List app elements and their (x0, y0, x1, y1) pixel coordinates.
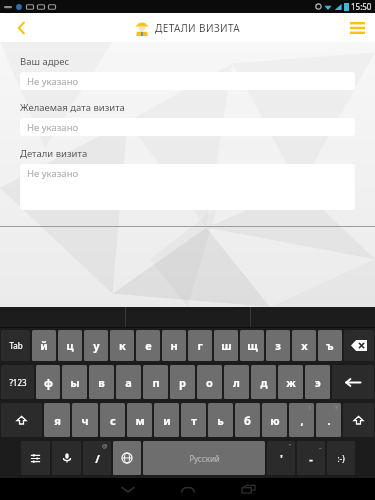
staticText: д (260, 375, 268, 390)
button[interactable]: б (235, 403, 260, 437)
button[interactable]: я (44, 403, 70, 437)
staticText: у (93, 338, 100, 353)
button[interactable]: з (266, 330, 290, 361)
staticText: ? (335, 404, 338, 412)
button[interactable]: ?123 (1, 365, 34, 399)
button[interactable]: Voice input (52, 441, 81, 475)
staticText: в (98, 375, 105, 390)
staticText: Ваш адрес (20, 55, 70, 68)
button[interactable]: Не указано (20, 118, 355, 136)
staticText: ! (309, 404, 311, 412)
staticText: - (309, 451, 313, 466)
button[interactable]: Home (158, 478, 218, 500)
button[interactable]: , (289, 403, 314, 437)
staticText: Не указано (27, 167, 79, 180)
button[interactable]: Backspace (344, 330, 374, 361)
staticText: ю (270, 413, 280, 428)
button[interactable]: ю (262, 403, 287, 437)
button[interactable]: Settings (21, 441, 50, 475)
staticText: ъ (326, 338, 334, 353)
button[interactable]: Enter (332, 365, 374, 399)
staticText: Детали визита (20, 147, 88, 160)
button[interactable]: . (316, 403, 341, 437)
button[interactable]: с (100, 403, 125, 437)
button[interactable]: щ (240, 330, 264, 361)
staticText: х (301, 338, 308, 353)
staticText: :-) (337, 453, 345, 464)
staticText: ж (286, 375, 296, 390)
button[interactable]: э (305, 365, 330, 399)
button[interactable]: Shift (343, 403, 374, 437)
button[interactable]: Не указано (20, 72, 355, 90)
staticText: и (163, 413, 171, 428)
button[interactable]: о (197, 365, 222, 399)
button[interactable]: ц (58, 330, 82, 361)
button[interactable]: р (170, 365, 195, 399)
button[interactable]: - (297, 441, 325, 475)
staticText: щ (247, 338, 258, 353)
staticText: / (95, 451, 100, 466)
button[interactable]: ж (278, 365, 303, 399)
button[interactable]: ф (36, 365, 60, 399)
staticText: а (125, 375, 132, 390)
button[interactable]: ч (72, 403, 98, 437)
button[interactable]: Menu (339, 13, 375, 42)
staticText: м (135, 413, 145, 428)
staticText: о (206, 375, 213, 390)
button[interactable]: п (143, 365, 168, 399)
staticText: ?123 (9, 377, 27, 388)
button[interactable]: Recents (218, 478, 278, 500)
button[interactable]: Back (0, 13, 44, 42)
button[interactable]: ' (267, 441, 295, 475)
button[interactable]: л (224, 365, 249, 399)
button[interactable]: и (154, 403, 179, 437)
staticText: , (300, 413, 304, 428)
button[interactable]: в (89, 365, 114, 399)
button[interactable]: Не указано (20, 164, 355, 210)
button[interactable]: а (116, 365, 141, 399)
staticText: ц (66, 338, 74, 353)
staticText: Tab (9, 340, 23, 351)
button[interactable]: :-) (327, 441, 355, 475)
button[interactable]: г (188, 330, 212, 361)
button[interactable]: т (181, 403, 206, 437)
button[interactable]: й (32, 330, 56, 361)
button[interactable]: у (84, 330, 108, 361)
staticText: н (170, 338, 178, 353)
button[interactable]: д (251, 365, 276, 399)
staticText: й (40, 338, 48, 353)
staticText: Не указано (27, 121, 79, 134)
button[interactable]: н (162, 330, 186, 361)
staticText: к (119, 338, 126, 353)
button[interactable]: х (292, 330, 316, 361)
staticText: ь (217, 413, 224, 428)
button[interactable]: к (110, 330, 134, 361)
button[interactable]: Hide keyboard (98, 478, 158, 500)
button[interactable]: ъ (318, 330, 342, 361)
button[interactable]: Shift (1, 403, 42, 437)
staticText: ш (221, 338, 232, 353)
button[interactable]: / (83, 441, 111, 475)
staticText: т (191, 413, 197, 428)
button[interactable]: ы (62, 365, 87, 399)
staticText: ы (70, 375, 80, 390)
staticText: э (315, 375, 321, 390)
button[interactable]: ь (208, 403, 233, 437)
button[interactable]: Change language (113, 441, 141, 475)
staticText: п (152, 375, 160, 390)
staticText: Желаемая дата визита (20, 101, 125, 114)
button[interactable]: Русский (143, 441, 265, 475)
staticText: 15:50 (351, 1, 372, 12)
staticText: _ (319, 442, 322, 450)
button[interactable]: Tab (1, 330, 30, 361)
staticText: " (289, 442, 292, 450)
staticText: Русский (189, 453, 220, 464)
button[interactable]: ш (214, 330, 238, 361)
button[interactable]: м (127, 403, 152, 437)
staticText: Не указано (27, 75, 79, 88)
button[interactable]: е (136, 330, 160, 361)
staticText: . (327, 413, 331, 428)
